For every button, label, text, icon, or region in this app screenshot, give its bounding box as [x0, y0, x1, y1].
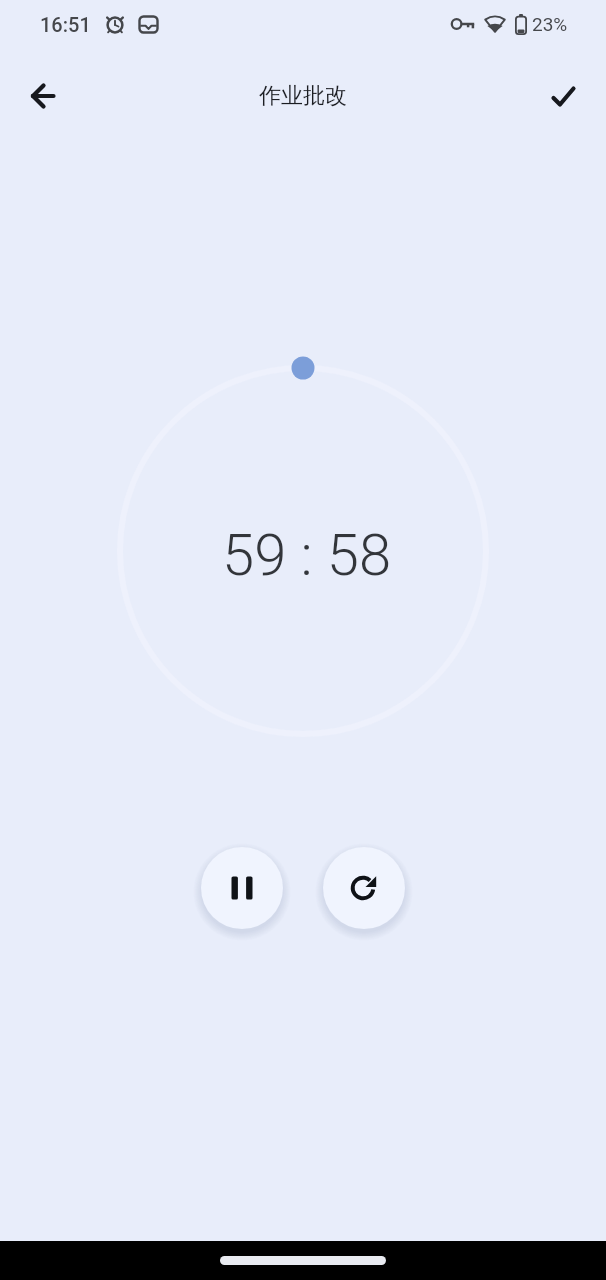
staticText: 作业批改: [259, 82, 347, 110]
button[interactable]: [539, 72, 587, 120]
button[interactable]: [19, 72, 67, 120]
button[interactable]: [323, 847, 405, 929]
staticText: 59 : 58: [222, 521, 392, 589]
button[interactable]: [201, 847, 283, 929]
staticText: 23%: [532, 13, 568, 35]
staticText: 16:51: [40, 13, 91, 36]
